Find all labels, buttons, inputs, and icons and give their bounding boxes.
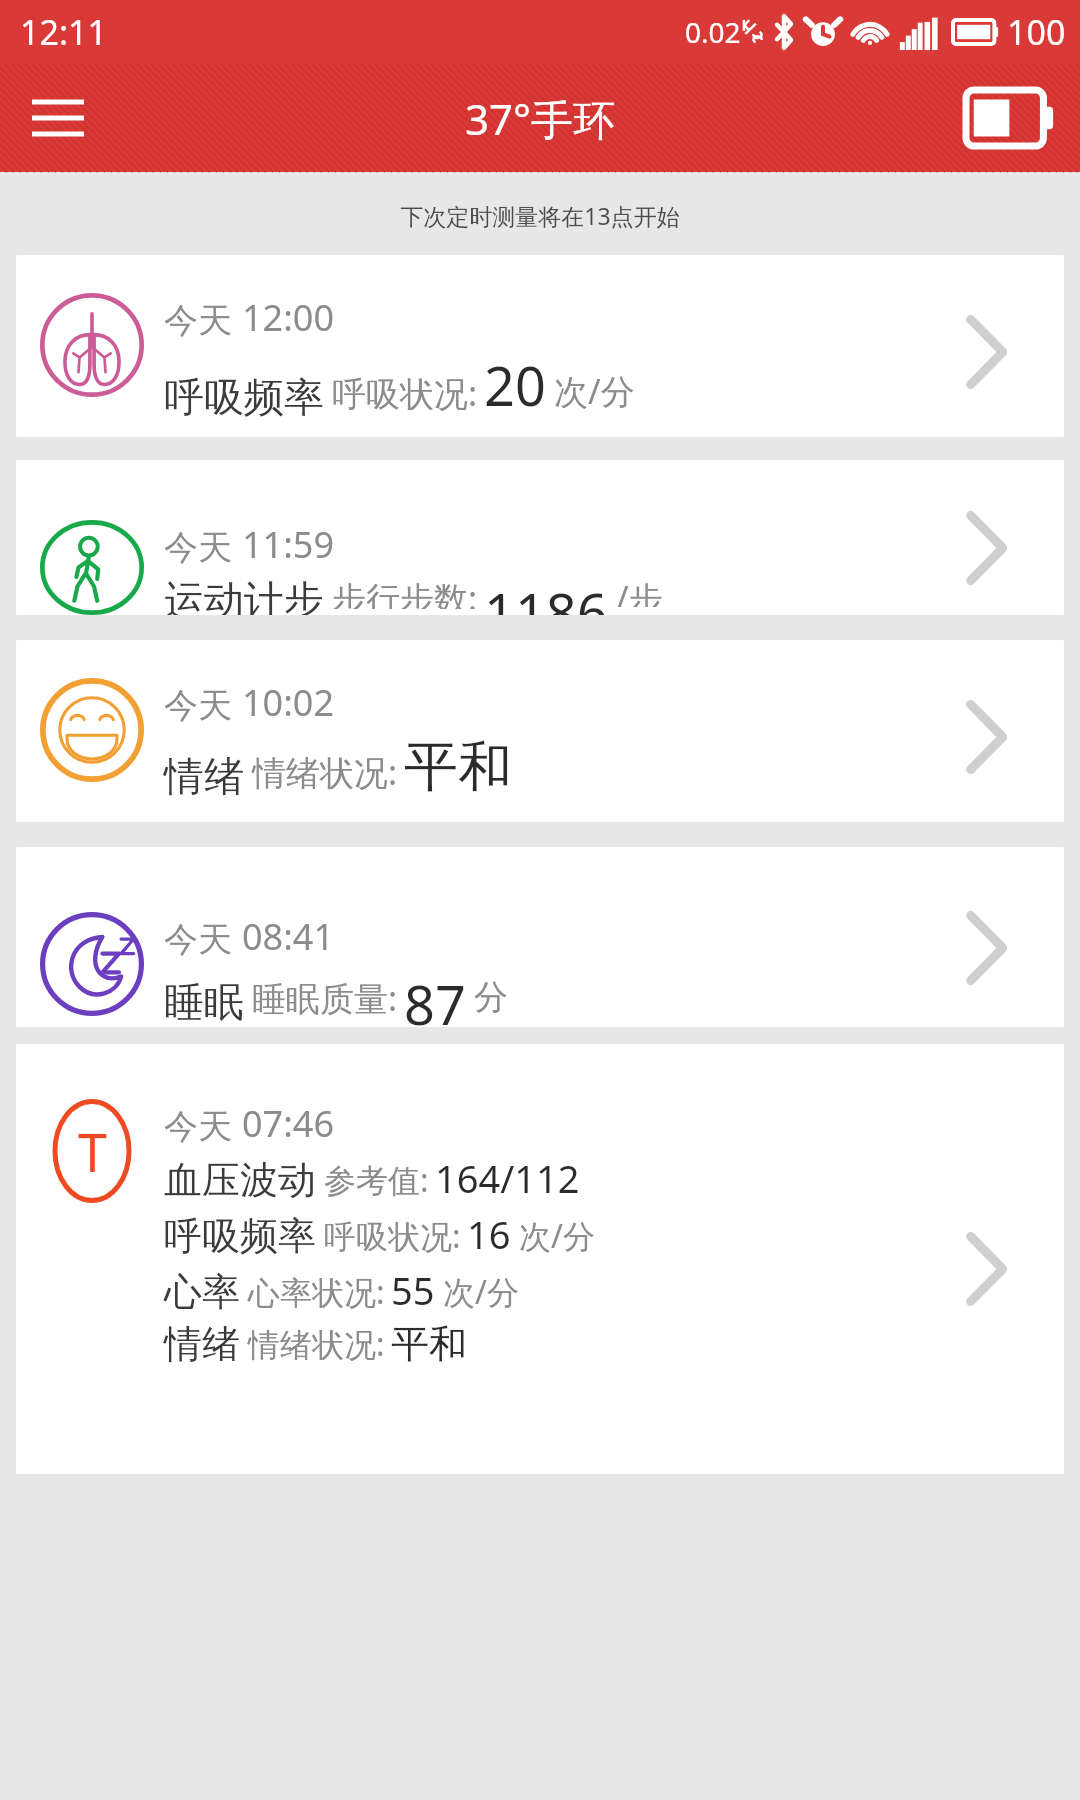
staticText: 分 <box>474 976 508 1019</box>
staticText: 平和 <box>391 1320 467 1368</box>
staticText: 次/分 <box>443 1270 519 1314</box>
staticText: 0.02 <box>685 13 741 51</box>
staticText: 步行步数: <box>332 575 478 609</box>
button[interactable]: T <box>16 1044 1064 1474</box>
button[interactable]: Menu <box>22 82 94 154</box>
staticText: 1186 <box>484 575 608 615</box>
staticText: 呼吸状况: <box>332 370 478 416</box>
staticText: 今天 <box>164 299 232 342</box>
staticText: 55 <box>391 1264 435 1316</box>
staticText: 37°手环 <box>465 90 616 147</box>
staticText: 心率 <box>164 1268 240 1316</box>
other: Signal 4G <box>899 14 943 50</box>
staticText: 12:11 <box>20 9 107 55</box>
staticText: T <box>78 1116 107 1187</box>
staticText: 情绪状况: <box>248 1322 385 1366</box>
other: Wi-Fi <box>851 16 889 48</box>
staticText: 今天 <box>164 918 232 961</box>
staticText: 睡眠 <box>164 977 244 1027</box>
staticText: 情绪状况: <box>252 749 398 795</box>
button[interactable]: 今天 <box>16 460 1064 615</box>
other: Battery <box>953 17 999 47</box>
staticText: 10:02 <box>242 678 335 727</box>
staticText: 12:00 <box>242 293 335 342</box>
other: Bluetooth <box>773 14 795 50</box>
staticText: 今天 <box>164 526 232 569</box>
staticText: 呼吸频率 <box>164 372 324 422</box>
staticText: 今天 <box>164 684 232 727</box>
staticText: 下次定时测量将在13点开始 <box>0 200 1080 231</box>
button[interactable]: 今天 <box>16 255 1064 437</box>
staticText: 次/分 <box>554 368 635 414</box>
staticText: 16 <box>467 1208 511 1260</box>
staticText: 164/112 <box>435 1152 580 1204</box>
staticText: 呼吸频率 <box>164 1212 316 1260</box>
staticText: 运动计步 <box>164 575 324 615</box>
staticText: 今天 <box>164 1105 232 1148</box>
staticText: 07:46 <box>242 1099 335 1148</box>
staticText: /步 <box>616 575 663 607</box>
staticText: 心率状况: <box>248 1270 385 1314</box>
other: Alarm <box>805 14 841 50</box>
staticText: 呼吸状况: <box>324 1214 461 1258</box>
staticText: 血压波动 <box>164 1156 316 1204</box>
button[interactable]: 今天 <box>16 640 1064 822</box>
staticText: 情绪 <box>164 1320 240 1368</box>
staticText: 20 <box>484 348 546 422</box>
staticText: 睡眠质量: <box>252 975 398 1021</box>
button[interactable]: Band battery <box>962 82 1058 154</box>
staticText: 11:59 <box>242 520 335 569</box>
staticText: 87 <box>404 967 466 1027</box>
staticText: 参考值: <box>324 1158 429 1202</box>
staticText: 次/分 <box>519 1214 595 1258</box>
staticText: 100 <box>1007 9 1066 55</box>
staticText: 08:41 <box>242 912 335 961</box>
staticText: 平和 <box>404 733 512 801</box>
staticText: 情绪 <box>164 751 244 801</box>
button[interactable]: 今天 <box>16 847 1064 1027</box>
